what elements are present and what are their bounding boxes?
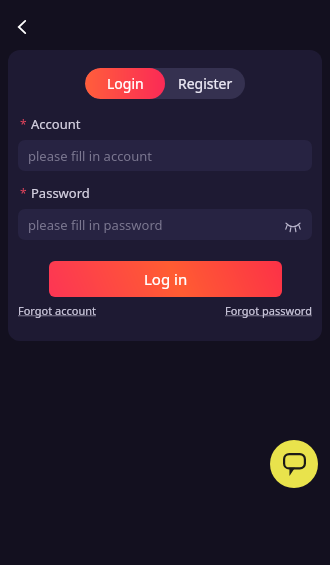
button[interactable]: please fill in account xyxy=(18,140,312,171)
staticText: * xyxy=(20,185,27,201)
button[interactable]: Log in xyxy=(49,261,282,297)
button[interactable]: Show password xyxy=(282,214,304,236)
staticText: Log in xyxy=(144,269,188,289)
staticText: please fill in account xyxy=(28,147,152,165)
staticText: Account xyxy=(31,115,81,133)
staticText: Forgot password xyxy=(225,303,312,318)
staticText: Password xyxy=(31,184,90,202)
button[interactable]: Register xyxy=(165,68,245,99)
button[interactable]: Forgot password xyxy=(225,303,312,318)
button[interactable]: please fill in password xyxy=(18,209,312,240)
staticText: Register xyxy=(178,74,233,93)
button[interactable]: Login xyxy=(85,68,165,99)
button[interactable]: Forgot account xyxy=(18,303,97,318)
staticText: Forgot account xyxy=(18,303,97,318)
staticText: * xyxy=(20,116,27,132)
staticText: Login xyxy=(107,74,144,93)
button[interactable]: Back xyxy=(6,11,38,43)
button[interactable]: Chat support xyxy=(270,440,318,488)
staticText: please fill in password xyxy=(28,216,163,234)
